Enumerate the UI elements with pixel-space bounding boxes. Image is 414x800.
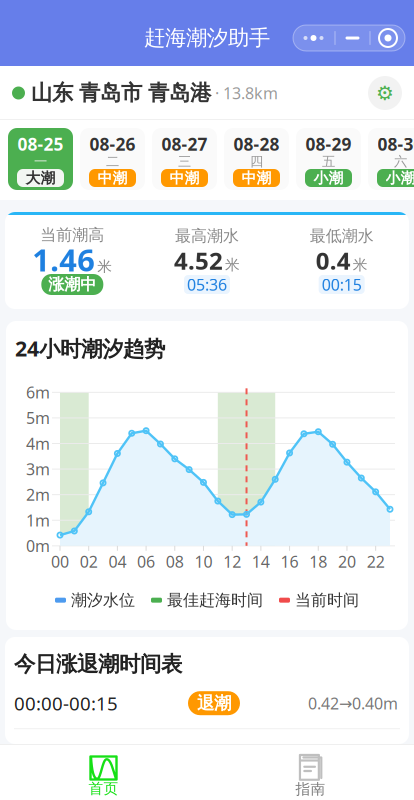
staticText: 赶海潮汐助手 <box>144 25 270 51</box>
staticText: 1.46 <box>32 239 95 280</box>
staticText: 5m <box>26 407 50 428</box>
staticText: 首页 <box>88 779 118 797</box>
staticText: 0m <box>26 535 50 556</box>
staticText: 米 <box>97 257 112 275</box>
staticText: 08-27 <box>161 132 207 155</box>
staticText: 00:00-00:15 <box>14 691 118 716</box>
button[interactable]: Close <box>370 25 405 51</box>
staticText: · 13.8km <box>211 82 278 104</box>
button[interactable]: 指南 <box>207 746 414 798</box>
staticText: 06 <box>137 551 155 572</box>
staticText: 米 <box>225 256 240 274</box>
staticText: 五 <box>322 153 335 170</box>
staticText: 08-25 <box>17 132 63 155</box>
staticText: 1m <box>26 510 50 531</box>
staticText: 中潮 <box>97 169 127 187</box>
staticText: 最佳赶海时间 <box>167 590 263 610</box>
staticText: 00:15 <box>322 274 362 295</box>
staticText: 18 <box>309 551 327 572</box>
staticText: 米 <box>353 256 368 274</box>
button[interactable]: 08-29 <box>296 128 361 190</box>
staticText: 最低潮水 <box>310 226 374 246</box>
staticText: 14 <box>252 551 270 572</box>
button[interactable]: 08-25 <box>8 128 73 190</box>
staticText: 08-29 <box>305 132 351 155</box>
staticText: 小潮 <box>313 169 343 187</box>
staticText: 3m <box>26 458 50 480</box>
staticText: 大潮 <box>25 169 55 187</box>
staticText: 六 <box>394 153 407 170</box>
staticText: 山东 青岛市 青岛港 <box>25 80 211 106</box>
staticText: 16 <box>281 551 299 572</box>
staticText: 当前潮高 <box>40 225 104 245</box>
staticText: 今日涨退潮时间表 <box>14 651 182 677</box>
staticText: 0.42→0.40m <box>308 693 398 714</box>
staticText: 02 <box>80 551 98 572</box>
staticText: 中潮 <box>241 169 271 187</box>
staticText: 当前时间 <box>295 590 359 610</box>
staticText: 潮汐水位 <box>71 590 135 610</box>
staticText: 最高潮水 <box>175 226 239 246</box>
button[interactable]: 08-30 <box>368 128 414 190</box>
staticText: 四 <box>250 153 263 170</box>
button[interactable]: 00:00-00:15 <box>5 677 409 729</box>
button[interactable]: More <box>292 25 334 51</box>
button[interactable]: 08-26 <box>80 128 145 190</box>
staticText: 退潮 <box>197 692 231 714</box>
staticText: 4m <box>26 433 50 454</box>
staticText: 6m <box>26 382 50 403</box>
staticText: 04 <box>108 551 126 572</box>
button[interactable]: 08-28 <box>224 128 289 190</box>
staticText: 涨潮中 <box>48 275 96 294</box>
staticText: 4.52 <box>174 245 223 276</box>
staticText: 中潮 <box>169 169 199 187</box>
staticText: 二 <box>106 153 119 170</box>
staticText: 2m <box>26 484 50 505</box>
staticText: 20 <box>338 551 356 572</box>
staticText: 一 <box>34 153 47 170</box>
staticText: 指南 <box>295 780 325 798</box>
staticText: 0.4 <box>316 245 351 276</box>
staticText: 22 <box>367 551 385 572</box>
staticText: 05:36 <box>187 274 227 295</box>
staticText: 12 <box>223 551 241 572</box>
staticText: 08 <box>166 551 184 572</box>
staticText: 08-26 <box>89 132 135 155</box>
staticText: 三 <box>178 153 191 170</box>
staticText: 10 <box>194 551 212 572</box>
staticText: ⚙ <box>376 82 394 104</box>
button[interactable]: 08-27 <box>152 128 217 190</box>
button[interactable]: 首页 <box>0 746 207 797</box>
staticText: 24小时潮汐趋势 <box>15 334 165 362</box>
staticText: 08-30 <box>377 132 414 155</box>
button[interactable]: Settings <box>368 76 402 110</box>
staticText: 08-28 <box>233 132 279 155</box>
staticText: 小潮 <box>385 169 414 187</box>
button[interactable]: Minimize <box>335 25 369 51</box>
staticText: 00 <box>51 551 69 572</box>
